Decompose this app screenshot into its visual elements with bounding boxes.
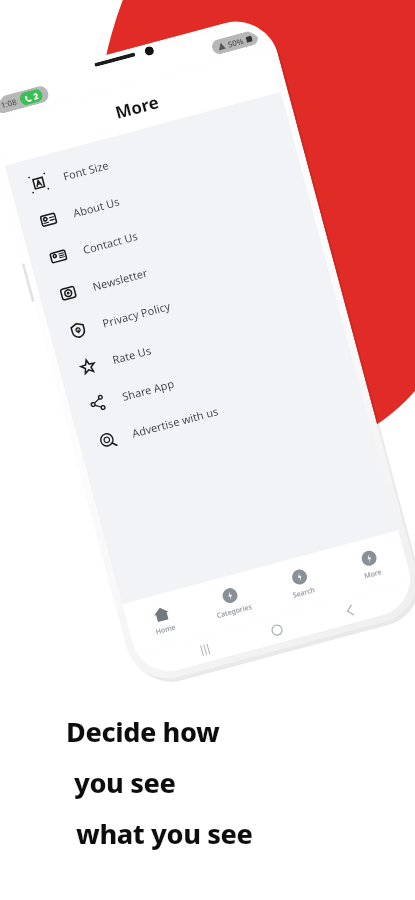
- staticText: what you see: [76, 815, 253, 852]
- button[interactable]: Rate Us: [55, 281, 341, 392]
- staticText: Contact Us: [81, 228, 139, 257]
- staticText: Categories: [215, 602, 253, 621]
- staticText: 2: [32, 90, 40, 102]
- staticText: Search: [291, 585, 316, 601]
- staticText: Share App: [120, 376, 175, 404]
- button[interactable]: Newsletter: [36, 208, 322, 318]
- button[interactable]: Home: [124, 593, 202, 648]
- staticText: Advertise with us: [130, 403, 220, 441]
- staticText: 50%: [226, 35, 245, 50]
- button[interactable]: About Us: [16, 134, 302, 245]
- staticText: Decide how: [66, 713, 220, 750]
- staticText: Newsletter: [91, 265, 149, 294]
- staticText: Privacy Policy: [101, 298, 172, 330]
- button[interactable]: Font Size: [6, 98, 292, 208]
- button[interactable]: Categories: [192, 574, 271, 629]
- staticText: Rate Us: [111, 342, 153, 367]
- staticText: 1:08: [0, 96, 18, 111]
- button[interactable]: Advertise with us: [75, 354, 361, 465]
- button[interactable]: Share App: [65, 318, 351, 428]
- button[interactable]: Search: [261, 556, 340, 611]
- button[interactable]: Contact Us: [26, 171, 312, 282]
- staticText: More: [113, 90, 162, 124]
- button[interactable]: Privacy Policy: [45, 244, 332, 355]
- button[interactable]: More: [331, 537, 410, 592]
- staticText: Font Size: [61, 157, 111, 184]
- staticText: More: [363, 567, 383, 582]
- button[interactable]: Recents: [195, 640, 214, 659]
- staticText: Home: [154, 622, 177, 637]
- staticText: you see: [74, 764, 176, 801]
- button[interactable]: Home: [267, 620, 287, 640]
- staticText: About Us: [71, 193, 121, 220]
- button[interactable]: Back: [341, 601, 360, 620]
